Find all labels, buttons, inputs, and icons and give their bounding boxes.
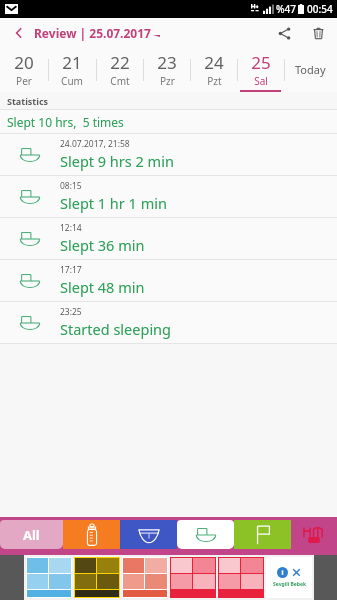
button[interactable]: 25 bbox=[237, 47, 284, 92]
staticText: Sevgili Bebek bbox=[273, 581, 306, 588]
staticText: Cum bbox=[61, 74, 83, 88]
staticText: 20 bbox=[14, 51, 34, 74]
staticText: 21 bbox=[62, 51, 82, 74]
staticText: Slept 10 hrs, 5 times bbox=[7, 114, 124, 130]
button[interactable]: Feeding bbox=[63, 520, 120, 549]
staticText: %47 bbox=[276, 2, 296, 16]
staticText: All bbox=[23, 526, 40, 544]
staticText: 12:14 bbox=[60, 222, 82, 234]
button[interactable]: 23 bbox=[143, 47, 190, 92]
staticText: Started sleeping bbox=[60, 319, 171, 339]
button[interactable]: 22 bbox=[96, 47, 143, 92]
staticText: Review | 25.07.2017 bbox=[34, 25, 151, 41]
staticText: 23:25 bbox=[60, 306, 82, 318]
button[interactable]: 24 bbox=[190, 47, 237, 92]
staticText: Statistics bbox=[7, 95, 49, 107]
staticText: Pzr bbox=[160, 74, 175, 88]
staticText: 08:15 bbox=[60, 180, 82, 192]
staticText: Slept 9 hrs 2 min bbox=[60, 151, 174, 171]
staticText: 24 bbox=[204, 51, 224, 74]
button[interactable]: 24.07.2017, 21:58 bbox=[0, 134, 337, 175]
button[interactable]: Slept 10 hrs, 5 times bbox=[0, 110, 337, 133]
staticText: Sal bbox=[254, 74, 268, 88]
staticText: Today bbox=[295, 62, 326, 77]
button[interactable]: Buy bbox=[291, 520, 337, 549]
staticText: 24.07.2017, 21:58 bbox=[60, 138, 130, 150]
button[interactable]: All bbox=[0, 520, 63, 549]
staticText: 25 bbox=[251, 51, 271, 74]
staticText: 23 bbox=[157, 51, 177, 74]
button[interactable]: Sleep bbox=[177, 520, 234, 549]
staticText: Slept 1 hr 1 min bbox=[60, 193, 167, 213]
button[interactable]: Delete bbox=[305, 20, 331, 46]
button[interactable]: 08:15 bbox=[0, 176, 337, 217]
button[interactable]: Review | 25.07.2017 bbox=[34, 25, 160, 41]
staticText: 00:54 bbox=[307, 2, 333, 16]
button[interactable]: Advertisement bbox=[26, 557, 312, 598]
staticText: 17:17 bbox=[60, 264, 82, 276]
button[interactable]: Growth bbox=[234, 520, 291, 549]
button[interactable]: Diaper bbox=[120, 520, 177, 549]
staticText: 22 bbox=[110, 51, 130, 74]
staticText: Per bbox=[16, 74, 32, 88]
button[interactable]: Back bbox=[6, 20, 32, 46]
staticText: Cmt bbox=[110, 74, 130, 88]
button[interactable]: 20 bbox=[0, 47, 48, 92]
staticText: Slept 36 min bbox=[60, 235, 145, 255]
button[interactable]: 21 bbox=[48, 47, 96, 92]
staticText: Slept 48 min bbox=[60, 277, 145, 297]
button[interactable]: 17:17 bbox=[0, 260, 337, 301]
button[interactable]: Share bbox=[271, 20, 297, 46]
button[interactable]: Today bbox=[284, 47, 337, 92]
staticText: Pzt bbox=[207, 74, 222, 88]
button[interactable]: 23:25 bbox=[0, 302, 337, 343]
button[interactable]: 12:14 bbox=[0, 218, 337, 259]
